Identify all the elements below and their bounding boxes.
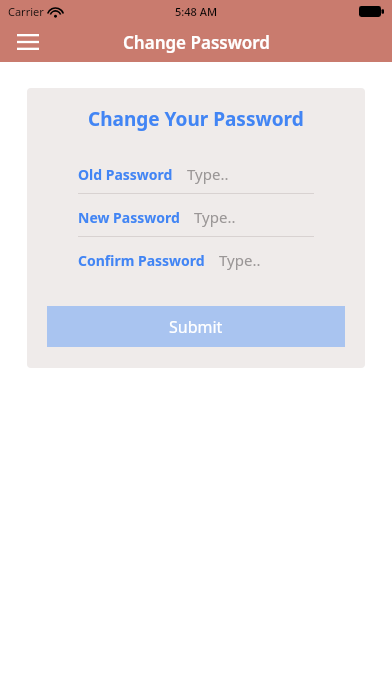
- staticText: New Password: [78, 208, 180, 227]
- staticText: Old Password: [78, 165, 173, 184]
- staticText: Type..: [219, 250, 261, 270]
- staticText: Type..: [194, 207, 236, 227]
- staticText: Confirm Password: [78, 251, 205, 270]
- staticText: Change Your Password: [88, 106, 304, 132]
- staticText: 5:48 AM: [175, 4, 218, 19]
- button[interactable]: Confirm Password: [78, 250, 314, 280]
- staticText: Carrier: [8, 4, 44, 19]
- button[interactable]: Open navigation menu: [10, 24, 46, 60]
- staticText: Change Password: [123, 31, 270, 54]
- button[interactable]: Submit: [47, 306, 345, 347]
- button[interactable]: New Password: [78, 207, 314, 237]
- button[interactable]: Old Password: [78, 164, 314, 194]
- staticText: Type..: [187, 164, 229, 184]
- staticText: Submit: [169, 316, 223, 338]
